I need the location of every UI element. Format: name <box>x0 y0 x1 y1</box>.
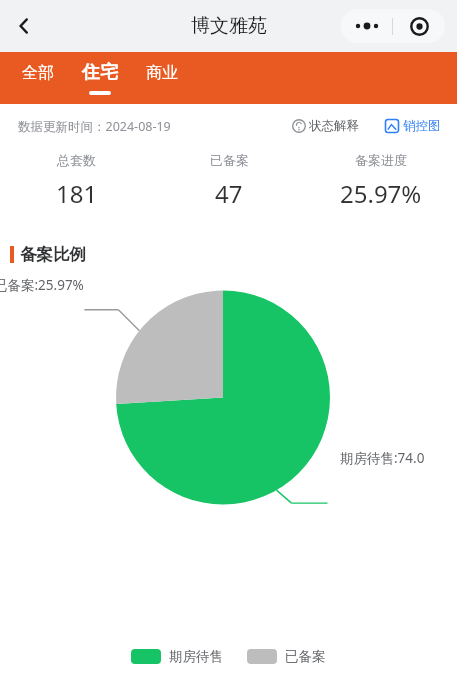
staticText: 期房待售:74.0 <box>340 449 425 467</box>
staticText: 博文雅苑 <box>191 14 267 38</box>
staticText: 25.97% <box>340 177 422 210</box>
button[interactable]: 全部 <box>8 60 68 97</box>
button[interactable]: More options <box>341 9 392 43</box>
button[interactable]: 状态解释 <box>290 116 361 136</box>
staticText: 47 <box>215 177 243 210</box>
staticText: 已备案 <box>285 648 326 665</box>
button[interactable]: 住宅 <box>68 58 132 98</box>
staticText: 181 <box>56 177 98 210</box>
staticText: 总套数 <box>57 152 96 168</box>
staticText: 状态解释 <box>309 118 359 134</box>
button[interactable]: 已备案 <box>247 648 326 665</box>
staticText: 全部 <box>22 63 54 83</box>
button[interactable]: 备案进度 <box>305 152 457 210</box>
button[interactable]: 已备案 <box>153 152 305 210</box>
staticText: 已备案 <box>210 152 249 168</box>
staticText: 备案进度 <box>355 152 407 168</box>
button[interactable]: Close <box>393 9 445 43</box>
staticText: 数据更新时间：2024-08-19 <box>18 118 171 135</box>
staticText: 期房待售 <box>169 648 223 665</box>
button[interactable]: 销控图 <box>383 116 443 136</box>
button[interactable]: 期房待售 <box>131 648 223 665</box>
button[interactable]: Back <box>0 2 48 50</box>
staticText: 住宅 <box>82 61 118 84</box>
staticText: 已备案:25.97% <box>0 276 84 294</box>
staticText: 销控图 <box>403 118 441 134</box>
staticText: 商业 <box>146 63 178 83</box>
button[interactable]: 商业 <box>132 60 192 97</box>
button[interactable]: 总套数 <box>0 152 153 210</box>
staticText: 备案比例 <box>20 244 86 265</box>
